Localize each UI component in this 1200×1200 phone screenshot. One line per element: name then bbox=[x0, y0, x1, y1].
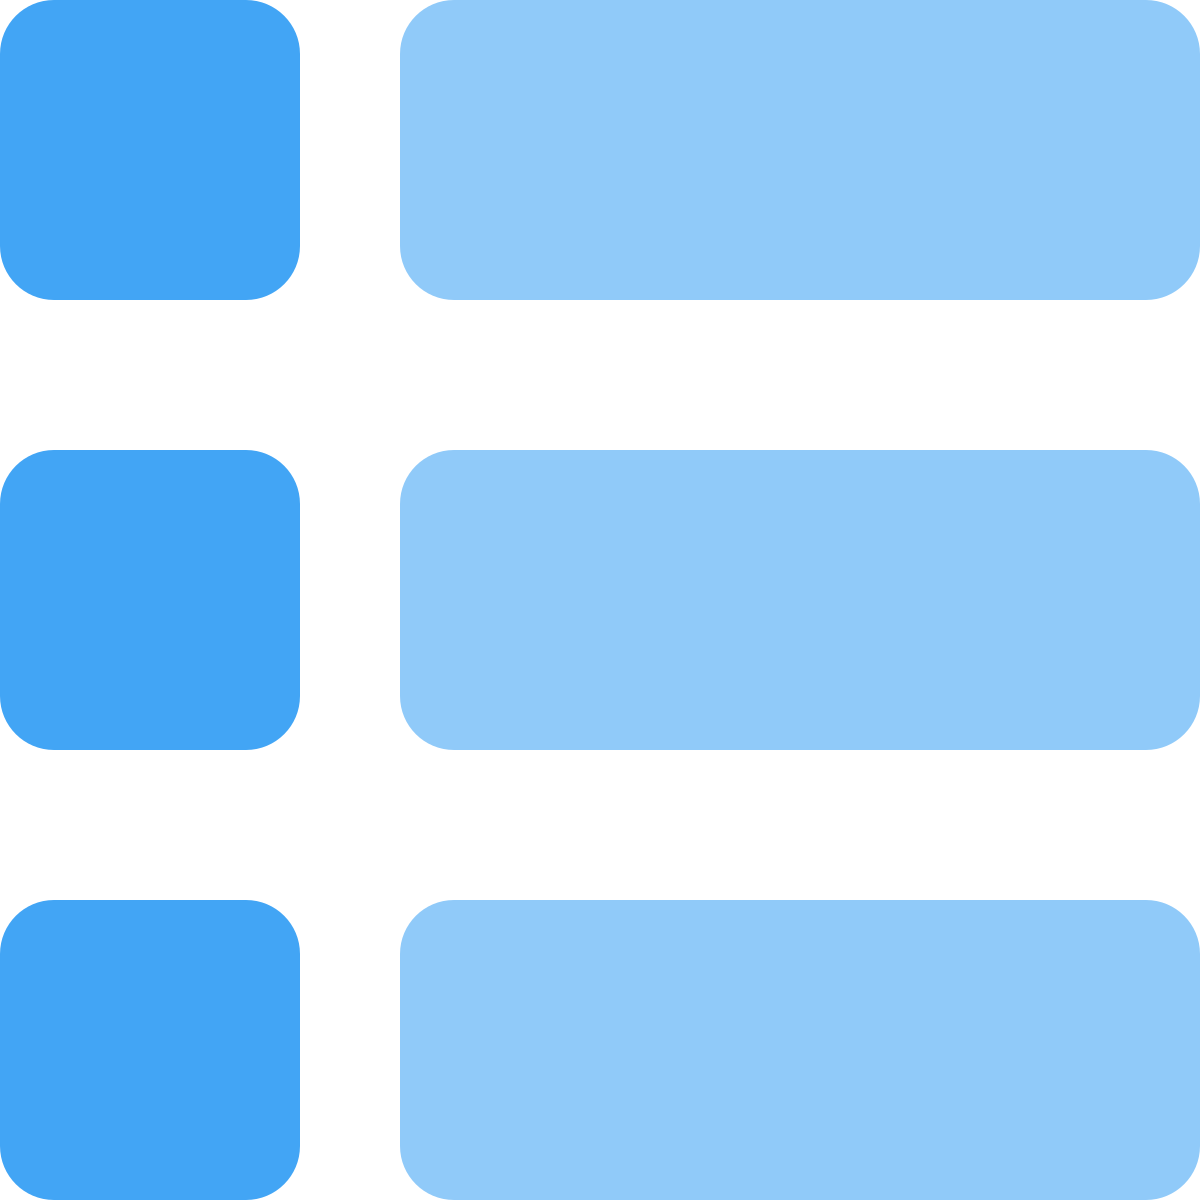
button[interactable]: List row 3 bbox=[0, 900, 1200, 1200]
button[interactable]: List row 1 bbox=[0, 0, 1200, 300]
button[interactable]: List row 2 bbox=[0, 450, 1200, 750]
